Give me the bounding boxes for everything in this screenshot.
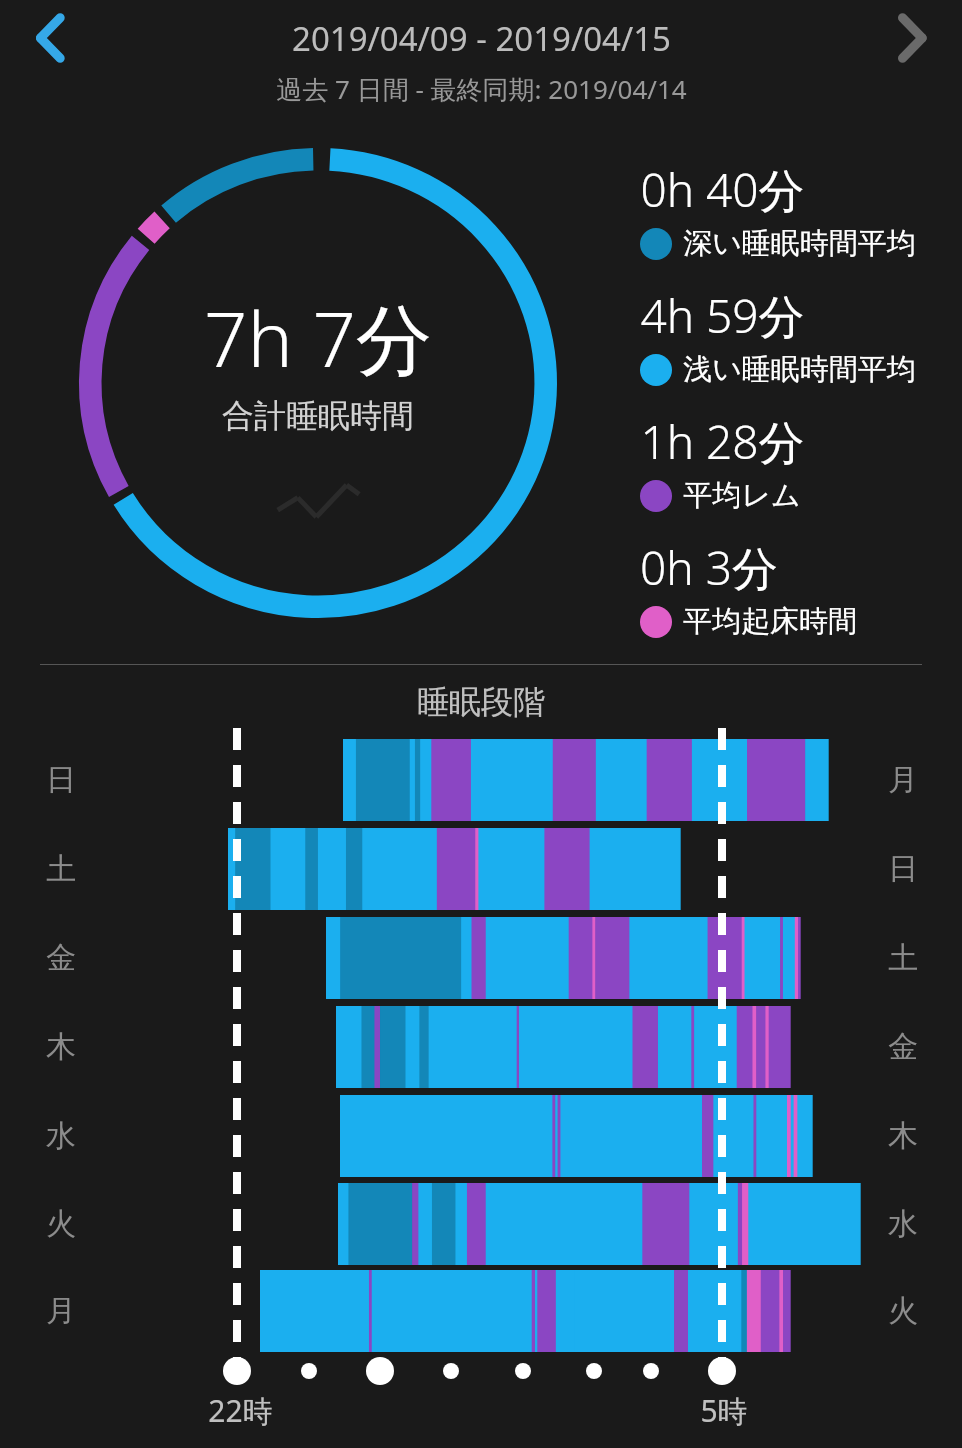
staticText: 平均起床時間 [683, 603, 857, 640]
staticText: 金 [46, 939, 76, 977]
staticText: 月 [888, 761, 918, 799]
staticText: 睡眠段階 [417, 682, 545, 722]
staticText: 日 [46, 761, 76, 799]
staticText: 火 [46, 1205, 76, 1243]
staticText: 2019/04/09 - 2019/04/15 [292, 16, 671, 61]
staticText: 金 [888, 1028, 918, 1066]
button[interactable]: 1h 28分 [640, 410, 805, 514]
button[interactable]: Previous week [10, 0, 90, 76]
staticText: 7h 7分 [204, 286, 432, 390]
staticText: 合計睡眠時間 [222, 396, 414, 436]
staticText: 水 [46, 1117, 76, 1155]
staticText: 水 [888, 1205, 918, 1243]
staticText: 日 [888, 850, 918, 888]
staticText: 平均レム [683, 477, 801, 514]
staticText: 土 [888, 939, 918, 977]
button[interactable]: 0h 40分 [640, 158, 916, 262]
staticText: 0h 3分 [640, 536, 778, 599]
staticText: 22時 [208, 1390, 273, 1430]
staticText: 木 [46, 1028, 76, 1066]
button[interactable]: Next week [872, 0, 952, 76]
staticText: 火 [888, 1292, 918, 1330]
staticText: 1h 28分 [640, 410, 805, 473]
staticText: 月 [46, 1292, 76, 1330]
staticText: 過去 7 日間 - 最終同期: 2019/04/14 [276, 71, 687, 107]
staticText: 木 [888, 1117, 918, 1155]
staticText: 0h 40分 [640, 158, 805, 221]
staticText: 4h 59分 [640, 284, 805, 347]
button[interactable]: 0h 3分 [640, 536, 857, 640]
staticText: 5時 [700, 1390, 748, 1430]
button[interactable]: 4h 59分 [640, 284, 916, 388]
staticText: 深い睡眠時間平均 [683, 225, 916, 262]
staticText: 土 [46, 850, 76, 888]
staticText: 浅い睡眠時間平均 [683, 351, 916, 388]
